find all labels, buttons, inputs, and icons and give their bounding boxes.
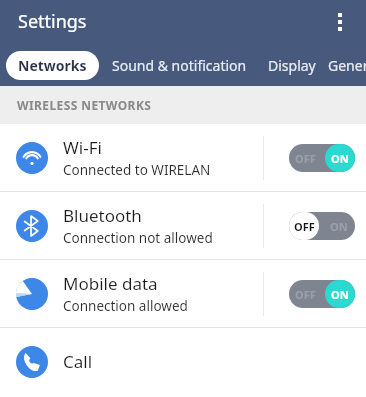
staticText: WIRELESS NETWORKS (17, 97, 152, 113)
staticText: Settings (18, 9, 87, 34)
staticText: OFF (295, 151, 316, 166)
staticText: OFF (294, 219, 315, 234)
staticText: Sound & notification (112, 56, 247, 75)
button[interactable]: Networks (6, 51, 99, 80)
button[interactable]: General (328, 56, 366, 75)
staticText: OFF (295, 287, 316, 302)
staticText: General (328, 56, 366, 75)
button[interactable]: Sound & notification (112, 56, 258, 75)
button[interactable]: Turn on Bluetooth (289, 212, 355, 240)
staticText: ON (330, 287, 348, 302)
button[interactable]: More options (320, 2, 360, 42)
staticText: ON (331, 287, 349, 302)
button[interactable]: Call (0, 328, 366, 395)
button[interactable]: Wi-Fi (0, 124, 366, 191)
staticText: Connection allowed (63, 297, 188, 315)
staticText: Call (63, 350, 93, 373)
button[interactable]: Mobile data (0, 260, 366, 327)
staticText: Display (268, 56, 316, 75)
staticText: Connected to WIRELAN (63, 161, 211, 179)
staticText: Wi-Fi (63, 136, 102, 159)
button[interactable]: Turn off Wi-Fi (289, 144, 355, 172)
staticText: Networks (18, 56, 87, 75)
button[interactable]: Bluetooth (0, 192, 366, 259)
staticText: Bluetooth (63, 204, 142, 227)
staticText: ON (331, 151, 349, 166)
button[interactable]: Turn off Mobile data (289, 280, 355, 308)
staticText: ON (330, 219, 348, 234)
staticText: Connection not allowed (63, 229, 213, 247)
button[interactable]: Display (268, 56, 316, 75)
staticText: Mobile data (63, 272, 158, 295)
staticText: ON (330, 151, 348, 166)
staticText: OFF (295, 219, 316, 234)
